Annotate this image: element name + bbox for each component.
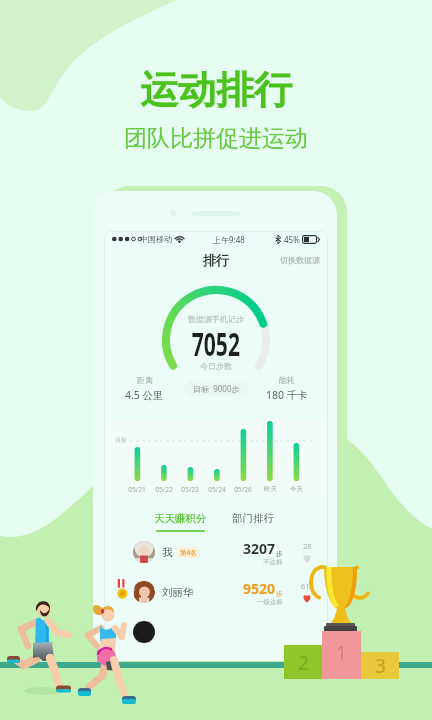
staticText: 不达标 xyxy=(263,558,283,566)
staticText: 天天赚积分 xyxy=(154,512,207,525)
staticText: 45% xyxy=(284,234,300,245)
staticText: 05/23 xyxy=(181,485,199,494)
staticText: 数据源手机记步 xyxy=(188,314,244,324)
button[interactable]: 切换数据源 xyxy=(280,255,328,265)
staticText: 切换数据源 xyxy=(280,255,320,265)
button[interactable]: 部门排行 xyxy=(228,512,278,525)
staticText: 刘丽华 xyxy=(162,586,194,599)
button[interactable] xyxy=(104,612,328,652)
staticText: 05/26 xyxy=(234,485,252,494)
staticText: 2 xyxy=(298,650,309,676)
staticText: 今日步数 xyxy=(200,361,232,371)
staticText: 步 xyxy=(276,550,283,558)
staticText: 目标 xyxy=(115,436,127,444)
button[interactable]: Like xyxy=(302,593,312,603)
staticText: 距离 xyxy=(137,375,153,385)
button[interactable]: 天天赚积分 xyxy=(150,512,211,532)
staticText: 618 xyxy=(301,581,314,591)
button[interactable]: 目标 9000步 xyxy=(184,381,249,396)
staticText: 1 xyxy=(336,640,347,666)
staticText: 05/24 xyxy=(208,485,226,494)
staticText: 上午9:48 xyxy=(213,234,245,245)
staticText: 今天 xyxy=(290,485,303,493)
staticText: 目标 9000步 xyxy=(193,383,240,394)
staticText: 团队比拼促进运动 xyxy=(124,124,308,153)
button[interactable]: 我 xyxy=(104,532,328,572)
staticText: 排行 xyxy=(203,252,229,268)
staticText: 昨天 xyxy=(264,485,277,493)
staticText: 9520 xyxy=(243,579,276,598)
button[interactable]: Like xyxy=(302,553,312,563)
staticText: 3207 xyxy=(243,539,276,558)
staticText: 7052 xyxy=(192,321,240,366)
staticText: 运动排行 xyxy=(140,66,292,114)
staticText: 4.5 公里 xyxy=(125,388,164,402)
staticText: 3 xyxy=(375,653,386,679)
staticText: 05/21 xyxy=(128,485,146,494)
staticText: 部门排行 xyxy=(232,512,274,525)
staticText: 05/22 xyxy=(155,485,173,494)
button[interactable]: 刘丽华 xyxy=(104,572,328,612)
staticText: 180 千卡 xyxy=(266,388,308,402)
staticText: 第4名 xyxy=(180,548,197,557)
staticText: 我 xyxy=(162,546,173,559)
staticText: 一级达标 xyxy=(257,598,283,606)
staticText: 能耗 xyxy=(279,375,295,385)
staticText: 步 xyxy=(276,590,283,598)
staticText: 28 xyxy=(303,541,312,551)
staticText: 中国移动 xyxy=(140,234,172,244)
